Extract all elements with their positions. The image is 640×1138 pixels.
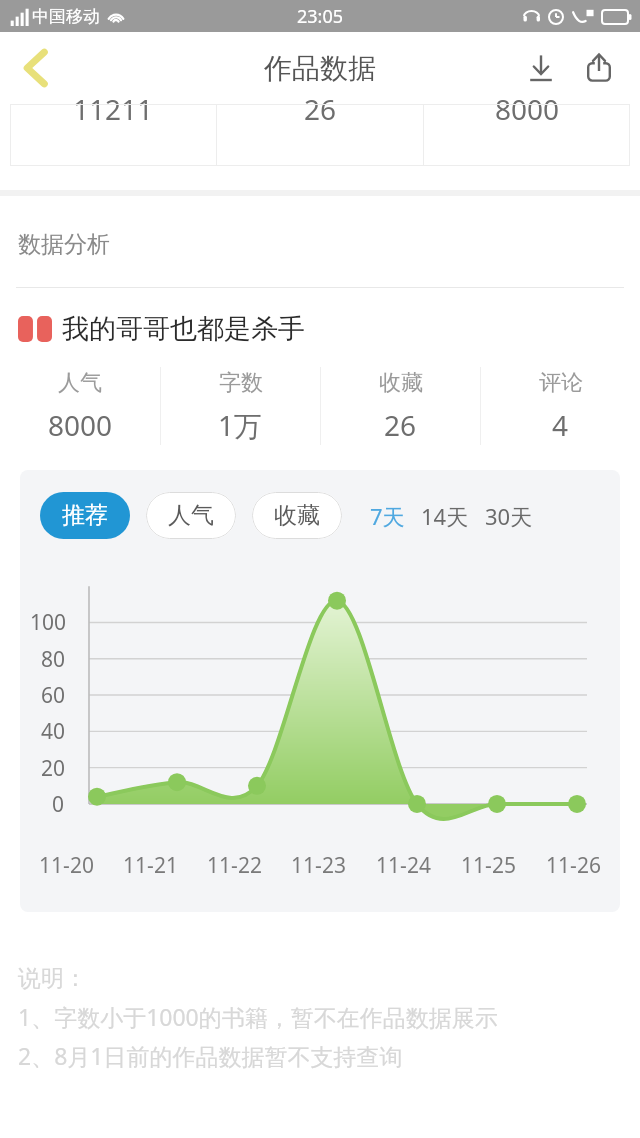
staticText: 人气	[168, 501, 214, 530]
staticText: 收藏	[379, 369, 423, 397]
staticText: 11-25	[461, 851, 516, 880]
staticText: 中国移动	[32, 6, 100, 27]
staticText: 数据分析	[18, 230, 110, 259]
staticText: 8000	[495, 90, 560, 128]
button[interactable]: Download	[514, 41, 568, 95]
staticText: 26	[384, 406, 417, 444]
button[interactable]: 14天	[419, 501, 471, 531]
staticText: 2、8月1日前的作品数据暂不支持查询	[18, 1040, 403, 1071]
staticText: 0	[52, 790, 65, 819]
staticText: 8000	[48, 406, 113, 444]
staticText: 推荐	[62, 501, 108, 530]
staticText: 收藏	[274, 501, 320, 530]
staticText: 字数	[219, 369, 263, 397]
staticText: 80	[41, 645, 66, 674]
staticText: 7天	[370, 501, 405, 531]
staticText: 说明：	[18, 964, 87, 993]
staticText: 4	[552, 406, 569, 444]
button[interactable]: Share	[572, 41, 626, 95]
button[interactable]: 人气	[0, 369, 160, 444]
staticText: 11-21	[123, 851, 178, 880]
staticText: 11-26	[546, 851, 601, 880]
staticText: 11-23	[291, 851, 346, 880]
staticText: 11-20	[39, 851, 94, 880]
staticText: 1万	[218, 406, 263, 444]
staticText: 1、字数小于1000的书籍，暂不在作品数据展示	[18, 1001, 498, 1032]
button[interactable]: Back	[8, 40, 64, 96]
staticText: 评论	[539, 369, 583, 397]
staticText: 30天	[485, 501, 533, 531]
staticText: 作品数据	[264, 51, 376, 86]
staticText: 40	[41, 717, 66, 746]
button[interactable]: 收藏	[252, 492, 342, 539]
button[interactable]: 收藏	[321, 369, 480, 444]
staticText: 23:05	[297, 4, 344, 29]
staticText: 11211	[73, 90, 154, 128]
staticText: 11-24	[376, 851, 431, 880]
staticText: 26	[304, 90, 337, 128]
staticText: 我的哥哥也都是杀手	[62, 312, 305, 346]
staticText: 人气	[58, 369, 102, 397]
button[interactable]: 字数	[161, 369, 320, 444]
staticText: 60	[41, 681, 66, 710]
staticText: 20	[41, 754, 66, 783]
staticText: 100	[30, 608, 67, 637]
button[interactable]: 评论	[481, 369, 640, 444]
button[interactable]: 人气	[146, 492, 236, 539]
staticText: 11-22	[207, 851, 262, 880]
button[interactable]: 30天	[483, 501, 535, 531]
button[interactable]: 7天	[368, 501, 407, 531]
staticText: 14天	[421, 501, 469, 531]
button[interactable]: 推荐	[40, 492, 130, 539]
